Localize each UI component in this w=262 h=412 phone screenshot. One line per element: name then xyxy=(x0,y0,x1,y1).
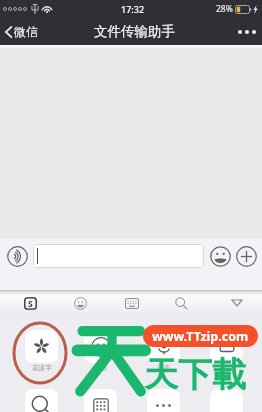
button[interactable]: Hide keyboard xyxy=(225,291,249,315)
button[interactable] xyxy=(33,244,204,268)
staticText: 天下載 xyxy=(144,353,246,396)
button[interactable]: 网盘 xyxy=(210,330,243,372)
button[interactable]: 表情 xyxy=(84,330,117,372)
button[interactable]: More options xyxy=(232,23,262,41)
staticText: 文件传输助手 xyxy=(94,23,175,40)
button[interactable]: 免流量 xyxy=(84,389,117,412)
staticText: 28% xyxy=(216,3,233,15)
button[interactable]: 更多 xyxy=(147,389,180,412)
staticText: 微信 xyxy=(14,24,38,39)
button[interactable]: 搜索 xyxy=(25,389,58,412)
staticText: 花漾字 xyxy=(32,364,52,372)
button[interactable]: Search xyxy=(169,291,193,315)
button[interactable]: Voice input xyxy=(4,244,30,268)
staticText: 表情 xyxy=(94,364,107,372)
button[interactable]: Sogou keyboard menu xyxy=(18,291,42,315)
button[interactable]: Keyboard layout xyxy=(120,291,144,315)
button[interactable]: More functions xyxy=(234,244,258,268)
button[interactable]: 花漾字 xyxy=(25,330,58,372)
button[interactable]: 语音 xyxy=(147,330,180,372)
staticText: 网盘 xyxy=(220,364,233,372)
button[interactable]: Emoji xyxy=(208,244,232,268)
button[interactable] xyxy=(210,389,243,412)
staticText: 语音 xyxy=(157,364,170,372)
button[interactable]: 微信 xyxy=(0,20,46,43)
staticText: www.TTzip.com xyxy=(152,328,249,345)
staticText: S xyxy=(28,298,33,310)
staticText: 17:32 xyxy=(121,3,145,15)
button[interactable]: Emoticons xyxy=(68,291,92,315)
